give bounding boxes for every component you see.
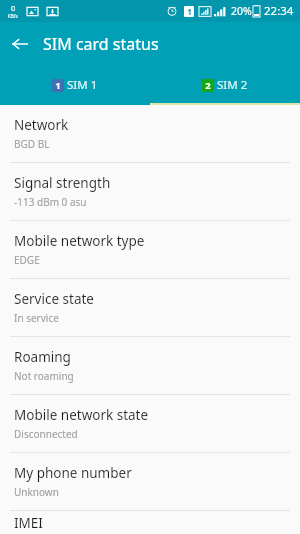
staticText: Unknown: [14, 485, 59, 499]
staticText: 2: [205, 79, 211, 92]
staticText: Not roaming: [14, 369, 74, 383]
button[interactable]: Signal strength: [0, 163, 300, 220]
staticText: Disconnected: [14, 427, 78, 441]
button[interactable]: Mobile network state: [0, 395, 300, 452]
staticText: SIM 1: [67, 77, 98, 93]
staticText: IMEI: [14, 514, 43, 532]
staticText: SIM 2: [217, 77, 248, 93]
staticText: 1: [55, 79, 61, 92]
button[interactable]: Navigate up: [0, 24, 40, 64]
staticText: SIM card status: [43, 33, 159, 55]
staticText: EDGE: [14, 253, 40, 267]
staticText: Mobile network state: [14, 406, 149, 424]
staticText: 0: [11, 3, 16, 13]
button[interactable]: My phone number: [0, 453, 300, 510]
button[interactable]: IMEI: [0, 511, 300, 534]
staticText: Mobile network type: [14, 232, 145, 250]
staticText: 1: [187, 6, 192, 17]
button[interactable]: Roaming: [0, 337, 300, 394]
staticText: -113 dBm 0 asu: [14, 195, 87, 209]
button[interactable]: Service state: [0, 279, 300, 336]
staticText: My phone number: [14, 464, 132, 482]
staticText: 20%: [231, 4, 252, 18]
staticText: KB/s: [8, 13, 18, 19]
staticText: Signal strength: [14, 174, 111, 192]
button[interactable]: Network: [0, 105, 300, 162]
button[interactable]: 1: [0, 65, 150, 105]
button[interactable]: Mobile network type: [0, 221, 300, 278]
staticText: Service state: [14, 290, 94, 308]
staticText: In service: [14, 311, 59, 325]
staticText: BGD BL: [14, 137, 50, 151]
staticText: 22:34: [264, 3, 294, 19]
staticText: Network: [14, 116, 69, 134]
staticText: Roaming: [14, 348, 71, 366]
button[interactable]: 2: [150, 65, 300, 105]
